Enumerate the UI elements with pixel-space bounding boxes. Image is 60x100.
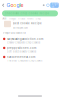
staticText: G: [6, 2, 10, 8]
staticText: Videos: [18, 17, 25, 20]
button[interactable]: Back: [0, 2, 6, 9]
staticText: handletheheat.com: [7, 55, 35, 59]
staticText: People also search for: [3, 32, 26, 34]
staticText: Images: [9, 17, 16, 20]
staticText: All: [3, 17, 7, 20]
staticText: sallysbakingaddiction.com: [7, 37, 43, 40]
staticText: allrecipes.com: [13, 26, 28, 29]
button[interactable]: handletheheat.com: [0, 55, 60, 62]
button[interactable]: preppykitchen.com: [0, 46, 60, 53]
staticText: Best Cookie Recipe: [13, 22, 42, 25]
staticText: chocolate chip cookie recipe: [5, 12, 50, 15]
staticText: o: [10, 2, 13, 8]
staticText: Chewy Chocolate Chip Cookies: [7, 41, 40, 44]
button[interactable]: sallysbakingaddiction.com: [0, 37, 60, 44]
staticText: Shop: [35, 17, 40, 20]
staticText: g: [16, 2, 19, 8]
button[interactable]: chocolate chip cookie recipe: [2, 10, 58, 16]
button[interactable]: Labs: [42, 2, 46, 9]
button[interactable]: Sign in: [50, 2, 59, 8]
staticText: o: [13, 2, 16, 8]
staticText: News: [27, 17, 33, 20]
staticText: Sign in: [51, 2, 57, 8]
staticText: The Best Chocolate Chip Cookie: [7, 59, 42, 62]
staticText: e: [20, 2, 23, 8]
staticText: preppykitchen.com: [7, 46, 36, 49]
staticText: Soft Batch Bakery Cookies: [7, 50, 36, 53]
button[interactable]: Account: [46, 2, 50, 9]
